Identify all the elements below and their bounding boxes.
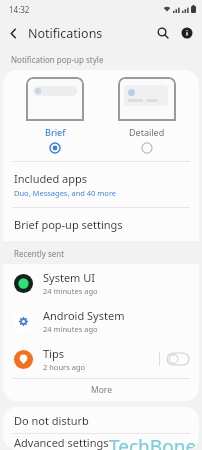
button[interactable]: System UI — [3, 264, 199, 302]
button[interactable]: Advanced settings — [3, 434, 199, 450]
button[interactable]: Back — [0, 20, 26, 46]
button[interactable]: Toggle Tips notifications — [167, 353, 189, 365]
staticText: Recently sent — [14, 248, 65, 259]
staticText: Notifications — [28, 25, 103, 42]
staticText: Notification pop-up style — [11, 54, 104, 65]
button[interactable]: Android System — [3, 302, 199, 340]
button[interactable]: Detailed — [108, 77, 186, 154]
staticText: Do not disturb — [14, 413, 89, 428]
staticText: Android System — [43, 308, 125, 323]
staticText: 24 minutes ago — [43, 286, 98, 296]
button[interactable]: Tips — [3, 340, 199, 378]
staticText: System UI — [43, 270, 96, 285]
button[interactable]: Search — [150, 20, 176, 46]
button[interactable]: Included apps — [3, 162, 199, 207]
staticText: Brief pop-up settings — [14, 217, 123, 232]
button[interactable]: Brief pop-up settings — [3, 208, 199, 241]
staticText: Brief — [45, 126, 66, 138]
button[interactable]: Brief — [16, 77, 94, 154]
staticText: Detailed — [129, 126, 165, 138]
staticText: 24 minutes ago — [43, 324, 98, 334]
staticText: TechBone — [109, 434, 197, 450]
button[interactable]: More — [3, 379, 199, 401]
staticText: Duo, Messages, and 40 more — [14, 188, 117, 198]
staticText: Included apps — [14, 171, 88, 186]
staticText: Advanced settings — [14, 435, 109, 450]
button[interactable]: Do not disturb — [3, 407, 199, 433]
staticText: 14:32 — [9, 4, 30, 15]
button[interactable]: Help — [176, 20, 198, 46]
staticText: More — [91, 384, 112, 396]
staticText: Tips — [43, 346, 64, 361]
staticText: 2 hours ago — [43, 362, 86, 372]
